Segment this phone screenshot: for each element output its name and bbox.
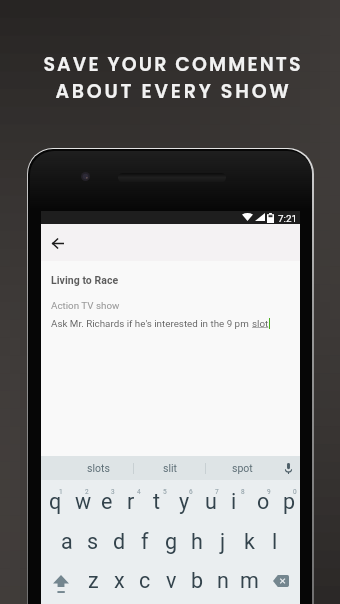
- button[interactable]: h: [184, 520, 210, 559]
- staticText: c: [139, 568, 151, 593]
- staticText: 8: [241, 488, 245, 496]
- button[interactable]: 1: [41, 480, 67, 520]
- staticText: Living to Race: [51, 274, 119, 286]
- button[interactable]: Back: [44, 229, 72, 257]
- staticText: 9: [267, 488, 271, 496]
- button[interactable]: n: [210, 559, 236, 598]
- button[interactable]: spot: [206, 456, 278, 480]
- button[interactable]: Backspace: [262, 559, 300, 598]
- button[interactable]: v: [158, 559, 184, 598]
- staticText: y: [179, 489, 190, 514]
- staticText: 5: [163, 488, 167, 496]
- button[interactable]: 5: [145, 480, 171, 520]
- staticText: z: [88, 568, 99, 593]
- staticText: s: [87, 529, 99, 554]
- staticText: e: [101, 489, 113, 514]
- staticText: j: [220, 529, 226, 554]
- button[interactable]: j: [210, 520, 236, 559]
- staticText: p: [283, 489, 296, 514]
- button[interactable]: 8: [223, 480, 249, 520]
- staticText: g: [165, 529, 178, 554]
- staticText: 7:21: [278, 213, 297, 224]
- staticText: 2: [85, 488, 89, 496]
- button[interactable]: m: [236, 559, 262, 598]
- button[interactable]: x: [106, 559, 132, 598]
- button[interactable]: z: [80, 559, 106, 598]
- button[interactable]: s: [80, 520, 106, 559]
- staticText: h: [191, 529, 203, 554]
- staticText: k: [244, 529, 255, 554]
- staticText: u: [205, 489, 217, 514]
- button[interactable]: 3: [93, 480, 119, 520]
- staticText: 4: [137, 488, 141, 496]
- staticText: 0: [293, 488, 297, 496]
- staticText: 3: [111, 488, 115, 496]
- staticText: Action TV show: [51, 300, 120, 311]
- staticText: n: [217, 568, 229, 593]
- staticText: i: [231, 489, 237, 514]
- button[interactable]: a: [54, 520, 80, 559]
- staticText: 6: [189, 488, 193, 496]
- button[interactable]: f: [132, 520, 158, 559]
- staticText: t: [153, 489, 161, 514]
- staticText: o: [257, 489, 270, 514]
- button[interactable]: Shift: [41, 559, 80, 598]
- staticText: r: [127, 489, 135, 514]
- staticText: a: [61, 529, 73, 554]
- button[interactable]: l: [262, 520, 288, 559]
- staticText: slots: [87, 462, 110, 474]
- button[interactable]: slit: [134, 456, 206, 480]
- staticText: slot: [252, 318, 269, 329]
- button[interactable]: Voice input: [278, 456, 299, 480]
- button[interactable]: b: [184, 559, 210, 598]
- staticText: f: [141, 529, 149, 554]
- staticText: v: [166, 568, 177, 593]
- button[interactable]: d: [106, 520, 132, 559]
- button[interactable]: 4: [119, 480, 145, 520]
- staticText: Ask Mr. Richards if he's interested in t…: [51, 318, 252, 329]
- button[interactable]: 2: [67, 480, 93, 520]
- staticText: spot: [232, 462, 253, 474]
- staticText: 7: [215, 488, 219, 496]
- button[interactable]: k: [236, 520, 262, 559]
- button[interactable]: slots: [62, 456, 134, 480]
- button[interactable]: 9: [249, 480, 275, 520]
- staticText: ABOUT EVERY SHOW: [55, 78, 292, 105]
- button[interactable]: c: [132, 559, 158, 598]
- staticText: d: [113, 529, 126, 554]
- staticText: SAVE YOUR COMMENTS: [43, 51, 303, 78]
- staticText: q: [49, 489, 62, 514]
- staticText: 1: [59, 488, 63, 496]
- staticText: m: [240, 568, 259, 593]
- staticText: x: [114, 568, 125, 593]
- staticText: b: [191, 568, 204, 593]
- button[interactable]: 0: [275, 480, 300, 520]
- staticText: l: [272, 529, 278, 554]
- button[interactable]: g: [158, 520, 184, 559]
- button[interactable]: 7: [197, 480, 223, 520]
- staticText: slit: [163, 462, 177, 474]
- staticText: w: [75, 489, 92, 514]
- button[interactable]: 6: [171, 480, 197, 520]
